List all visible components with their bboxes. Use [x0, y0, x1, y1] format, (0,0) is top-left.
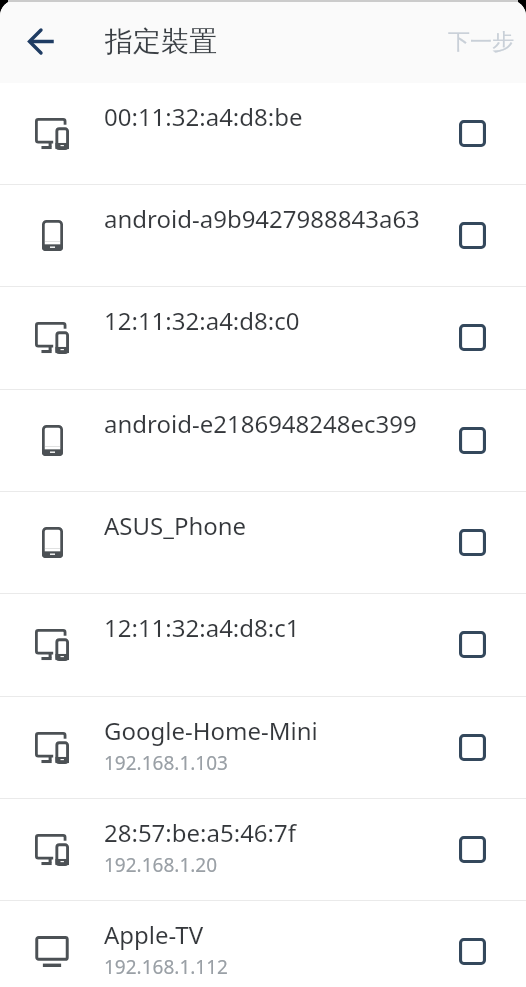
- staticText: Apple-TV: [104, 918, 204, 951]
- staticText: 12:11:32:a4:d8:c0: [104, 304, 300, 337]
- button[interactable]: android-a9b9427988843a63: [0, 185, 526, 286]
- button[interactable]: 28:57:be:a5:46:7f: [0, 799, 526, 900]
- button[interactable]: Select android-a9b9427988843a63: [436, 185, 509, 286]
- button[interactable]: Google-Home-Mini: [0, 697, 526, 798]
- staticText: 下一步: [448, 28, 514, 56]
- staticText: 00:11:32:a4:d8:be: [104, 100, 303, 133]
- button[interactable]: Select Apple-TV: [436, 901, 509, 987]
- button[interactable]: 00:11:32:a4:d8:be: [0, 83, 526, 184]
- button[interactable]: 12:11:32:a4:d8:c1: [0, 594, 526, 695]
- button[interactable]: Back: [0, 0, 82, 83]
- button[interactable]: Select Google-Home-Mini: [436, 697, 509, 798]
- button[interactable]: ASUS_Phone: [0, 492, 526, 593]
- button[interactable]: Select 12:11:32:a4:d8:c1: [436, 594, 509, 695]
- button[interactable]: Select ASUS_Phone: [436, 492, 509, 593]
- staticText: Google-Home-Mini: [104, 714, 318, 747]
- button[interactable]: 12:11:32:a4:d8:c0: [0, 287, 526, 388]
- button[interactable]: 下一步: [432, 14, 526, 70]
- button[interactable]: Select 00:11:32:a4:d8:be: [436, 83, 509, 184]
- button[interactable]: Select 28:57:be:a5:46:7f: [436, 799, 509, 900]
- staticText: 12:11:32:a4:d8:c1: [104, 611, 300, 644]
- staticText: ASUS_Phone: [104, 509, 247, 542]
- staticText: android-a9b9427988843a63: [104, 202, 420, 235]
- staticText: 指定裝置: [105, 24, 217, 59]
- staticText: 192.168.1.103: [104, 750, 228, 776]
- staticText: 192.168.1.20: [104, 852, 218, 878]
- button[interactable]: Select android-e2186948248ec399: [436, 390, 509, 491]
- staticText: 28:57:be:a5:46:7f: [104, 816, 296, 849]
- button[interactable]: Select 12:11:32:a4:d8:c0: [436, 287, 509, 388]
- button[interactable]: android-e2186948248ec399: [0, 390, 526, 491]
- staticText: android-e2186948248ec399: [104, 407, 417, 440]
- button[interactable]: Apple-TV: [0, 901, 526, 987]
- staticText: 192.168.1.112: [104, 954, 228, 980]
